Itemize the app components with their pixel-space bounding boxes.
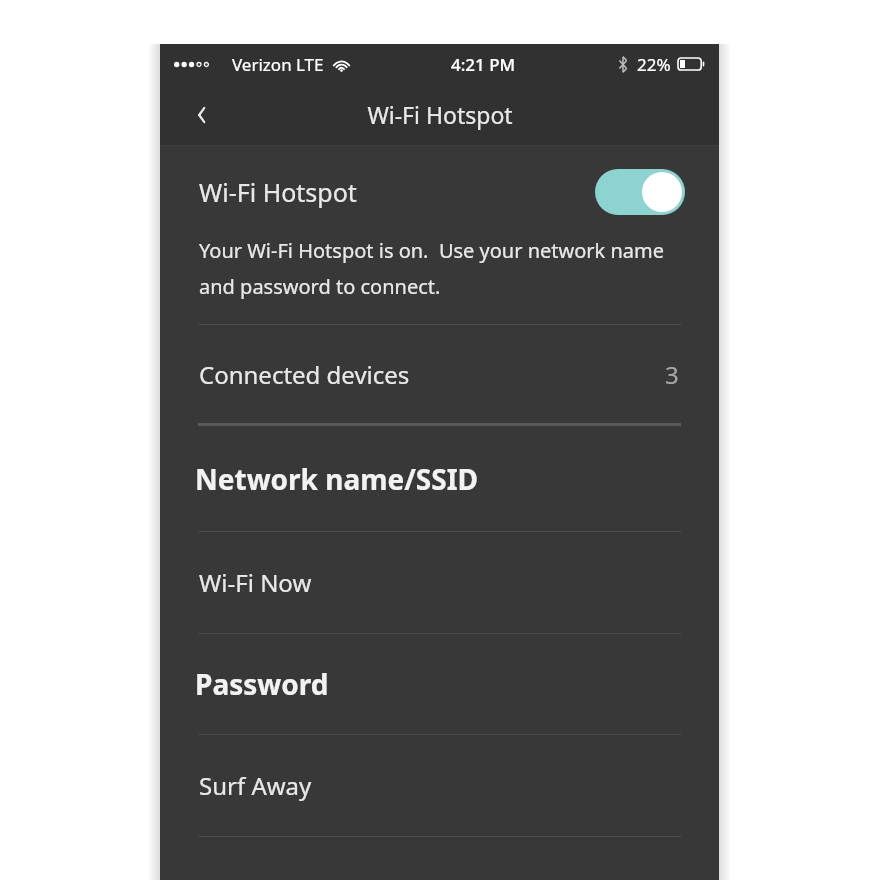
button[interactable]: Wi-Fi Now [160, 532, 719, 633]
staticText: Password [195, 665, 329, 703]
staticText: Surf Away [199, 769, 312, 802]
button[interactable]: Wi-Fi Hotspot [160, 146, 719, 237]
staticText: Your Wi-Fi Hotspot is on. Use your netwo… [199, 237, 665, 264]
staticText: 4:21 PM [451, 53, 516, 76]
button[interactable]: Connected devices [160, 325, 719, 423]
button[interactable]: Back [184, 97, 220, 133]
staticText: Network name/SSID [195, 460, 479, 498]
staticText: Connected devices [199, 358, 410, 391]
staticText: and password to connect. [199, 273, 441, 300]
staticText: 3 [665, 358, 679, 391]
staticText: 22% [637, 53, 671, 76]
staticText: Wi-Fi Hotspot [367, 99, 513, 130]
button[interactable]: Surf Away [160, 735, 719, 836]
staticText: Wi-Fi Hotspot [199, 175, 357, 209]
staticText: Verizon LTE [232, 53, 324, 76]
staticText: Wi-Fi Now [199, 566, 312, 599]
button[interactable]: Wi-Fi Hotspot toggle, on [595, 169, 685, 215]
